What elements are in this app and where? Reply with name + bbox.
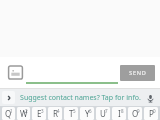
staticText: Q bbox=[5, 108, 12, 119]
staticText: W bbox=[20, 108, 28, 119]
button[interactable]: 6 bbox=[80, 107, 94, 120]
staticText: 3 bbox=[41, 108, 44, 114]
staticText: R bbox=[53, 108, 58, 119]
staticText: Suggest contact names? Tap for info. bbox=[20, 93, 141, 103]
button[interactable]: Voice input bbox=[143, 91, 157, 105]
staticText: U bbox=[100, 108, 106, 119]
staticText: T bbox=[69, 108, 74, 119]
button[interactable]: Suggest contact names? Tap for info. bbox=[18, 89, 142, 106]
button[interactable]: 2 bbox=[17, 107, 30, 120]
button[interactable]: 9 bbox=[128, 107, 142, 120]
staticText: 2 bbox=[25, 108, 28, 114]
button[interactable]: 8 bbox=[112, 107, 126, 120]
button[interactable]: Expand toolbar bbox=[2, 91, 15, 104]
staticText: 9 bbox=[137, 108, 140, 114]
staticText: E bbox=[37, 108, 42, 119]
button[interactable]: 0 bbox=[144, 107, 158, 120]
button[interactable] bbox=[26, 62, 118, 84]
button[interactable]: Attach media bbox=[7, 64, 24, 81]
staticText: 4 bbox=[57, 108, 60, 114]
staticText: 8 bbox=[121, 108, 124, 114]
button[interactable]: SEND bbox=[120, 65, 155, 81]
staticText: Y bbox=[85, 108, 90, 119]
button[interactable]: 1 bbox=[2, 107, 15, 120]
staticText: I bbox=[118, 108, 121, 119]
staticText: 6 bbox=[89, 108, 92, 114]
staticText: SEND bbox=[129, 69, 147, 77]
button[interactable]: 4 bbox=[48, 107, 62, 120]
staticText: O bbox=[132, 108, 139, 119]
button[interactable]: 7 bbox=[96, 107, 110, 120]
staticText: P bbox=[149, 108, 154, 119]
staticText: 0 bbox=[153, 108, 156, 114]
staticText: 7 bbox=[105, 108, 108, 114]
button[interactable]: 5 bbox=[64, 107, 78, 120]
staticText: 5 bbox=[73, 108, 76, 114]
staticText: 1 bbox=[10, 108, 13, 114]
button[interactable]: 3 bbox=[32, 107, 46, 120]
